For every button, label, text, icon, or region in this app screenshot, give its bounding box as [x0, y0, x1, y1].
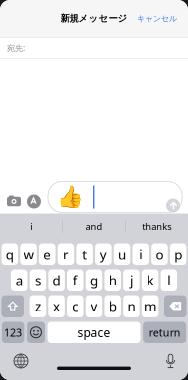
button[interactable]: c: [67, 295, 83, 317]
staticText: v: [90, 297, 97, 315]
staticText: l: [167, 271, 170, 289]
staticText: i: [30, 220, 32, 233]
staticText: d: [53, 271, 61, 289]
button[interactable]: u: [114, 243, 130, 265]
button[interactable]: Send: [166, 198, 180, 212]
button[interactable]: a: [11, 269, 27, 291]
button[interactable]: o: [151, 243, 168, 265]
button[interactable]: v: [86, 295, 102, 317]
button[interactable]: space: [47, 321, 140, 343]
staticText: e: [43, 245, 51, 263]
button[interactable]: [27, 321, 45, 343]
button[interactable]: return: [143, 321, 186, 343]
button[interactable]: [1, 295, 24, 317]
button[interactable]: g: [86, 269, 102, 291]
button[interactable]: h: [104, 269, 121, 291]
staticText: k: [147, 271, 154, 289]
staticText: 👍: [57, 185, 84, 209]
staticText: z: [35, 297, 41, 315]
button[interactable]: m: [142, 295, 158, 317]
button[interactable]: k: [142, 269, 158, 291]
staticText: a: [16, 271, 23, 289]
button[interactable]: s: [30, 269, 46, 291]
staticText: h: [109, 271, 117, 289]
staticText: q: [6, 245, 14, 263]
staticText: 123: [4, 325, 22, 339]
staticText: r: [63, 245, 69, 263]
button[interactable]: p: [170, 243, 186, 265]
staticText: s: [35, 271, 41, 289]
staticText: t: [82, 245, 87, 263]
button[interactable]: z: [30, 295, 46, 317]
staticText: m: [144, 297, 156, 315]
staticText: 宛先:: [7, 43, 25, 53]
button[interactable]: j: [123, 269, 140, 291]
button[interactable]: y: [95, 243, 112, 265]
button[interactable]: q: [2, 243, 18, 265]
staticText: and: [85, 220, 102, 233]
staticText: w: [23, 245, 33, 263]
staticText: b: [109, 297, 117, 315]
button[interactable]: Camera: [4, 195, 24, 212]
staticText: o: [155, 245, 163, 263]
staticText: c: [72, 297, 78, 315]
staticText: n: [127, 297, 135, 315]
button[interactable]: w: [20, 243, 37, 265]
button[interactable]: f: [67, 269, 83, 291]
button[interactable]: Apps: [24, 194, 44, 212]
button[interactable]: d: [48, 269, 65, 291]
button[interactable]: b: [104, 295, 121, 317]
staticText: u: [118, 245, 126, 263]
staticText: y: [100, 245, 107, 263]
button[interactable]: 123: [2, 321, 24, 343]
button[interactable]: Dictation: [159, 347, 182, 374]
staticText: space: [77, 324, 110, 340]
staticText: thanks: [142, 220, 171, 233]
button[interactable]: x: [48, 295, 65, 317]
staticText: g: [90, 271, 98, 289]
staticText: キャンセル: [137, 14, 177, 23]
button[interactable]: n: [123, 295, 140, 317]
staticText: x: [53, 297, 60, 315]
staticText: j: [130, 271, 133, 289]
button[interactable]: i: [0, 213, 62, 239]
staticText: i: [139, 245, 142, 263]
button[interactable]: t: [76, 243, 93, 265]
button[interactable]: i: [132, 243, 149, 265]
button[interactable]: e: [39, 243, 55, 265]
button[interactable]: Next keyboard: [8, 348, 34, 374]
button[interactable]: l: [161, 269, 177, 291]
staticText: 新規メッセージ: [60, 13, 127, 24]
button[interactable]: [164, 295, 186, 317]
button[interactable]: and: [63, 213, 125, 239]
button[interactable]: r: [58, 243, 74, 265]
button[interactable]: キャンセル: [131, 8, 188, 29]
button[interactable]: thanks: [126, 213, 188, 239]
staticText: p: [174, 245, 182, 263]
staticText: return: [149, 325, 181, 339]
staticText: f: [73, 271, 78, 289]
